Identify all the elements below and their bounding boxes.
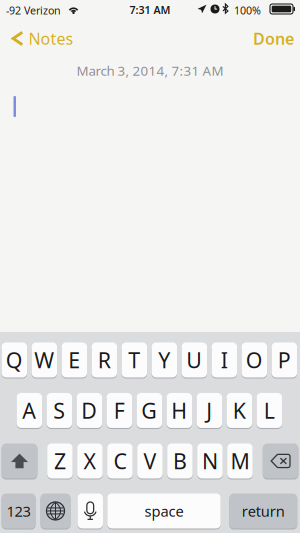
- staticText: P: [278, 346, 291, 374]
- button[interactable]: I: [212, 342, 237, 378]
- button[interactable]: U: [182, 342, 207, 378]
- staticText: X: [83, 447, 96, 475]
- button[interactable]: return: [229, 493, 297, 529]
- button[interactable]: H: [167, 393, 192, 429]
- staticText: H: [171, 396, 187, 425]
- staticText: R: [98, 346, 111, 374]
- staticText: Z: [54, 447, 66, 475]
- staticText: N: [202, 447, 218, 475]
- staticText: S: [53, 396, 65, 425]
- button[interactable]: C: [107, 443, 133, 479]
- button[interactable]: 123: [2, 493, 36, 529]
- button[interactable]: R: [92, 342, 117, 378]
- button[interactable]: M: [227, 443, 253, 479]
- staticText: D: [81, 396, 97, 425]
- staticText: A: [22, 396, 36, 425]
- staticText: J: [206, 396, 212, 425]
- staticText: Notes: [28, 28, 73, 49]
- button[interactable]: Next keyboard: [40, 493, 70, 529]
- staticText: -92 Verizon: [6, 3, 61, 17]
- staticText: G: [141, 396, 157, 425]
- button[interactable]: Delete: [263, 443, 298, 479]
- button[interactable]: Z: [47, 443, 73, 479]
- button[interactable]: L: [257, 393, 282, 429]
- button[interactable]: Y: [152, 342, 177, 378]
- button[interactable]: S: [47, 393, 72, 429]
- staticText: March 3, 2014, 7:31 AM: [76, 62, 223, 79]
- staticText: M: [230, 447, 249, 475]
- button[interactable]: P: [272, 342, 297, 378]
- button[interactable]: O: [242, 342, 267, 378]
- staticText: K: [233, 396, 246, 425]
- staticText: 7:31 AM: [129, 3, 170, 17]
- staticText: L: [264, 396, 275, 425]
- button[interactable]: K: [227, 393, 252, 429]
- staticText: V: [143, 447, 156, 475]
- button[interactable]: E: [62, 342, 87, 378]
- button[interactable]: G: [137, 393, 162, 429]
- staticText: E: [68, 346, 80, 374]
- staticText: 123: [7, 501, 31, 521]
- staticText: Y: [158, 346, 170, 374]
- button[interactable]: space: [107, 493, 221, 529]
- staticText: C: [113, 447, 126, 475]
- staticText: Q: [6, 346, 23, 374]
- button[interactable]: Q: [2, 342, 27, 378]
- staticText: 100%: [234, 3, 261, 17]
- button[interactable]: Notes: [0, 22, 100, 55]
- staticText: T: [128, 346, 140, 374]
- staticText: U: [186, 346, 202, 374]
- button[interactable]: Done: [238, 22, 296, 55]
- staticText: O: [246, 346, 263, 374]
- staticText: Done: [253, 28, 294, 49]
- staticText: W: [34, 346, 54, 374]
- staticText: space: [144, 501, 183, 521]
- button[interactable]: X: [77, 443, 103, 479]
- button[interactable]: T: [122, 342, 147, 378]
- button[interactable]: A: [17, 393, 42, 429]
- button[interactable]: D: [77, 393, 102, 429]
- button[interactable]: N: [197, 443, 223, 479]
- staticText: F: [114, 396, 125, 425]
- staticText: return: [242, 501, 285, 521]
- button[interactable]: V: [137, 443, 163, 479]
- staticText: I: [221, 346, 228, 374]
- button[interactable]: W: [32, 342, 57, 378]
- button[interactable]: B: [167, 443, 193, 479]
- staticText: B: [173, 447, 187, 475]
- button[interactable]: F: [107, 393, 132, 429]
- button[interactable]: J: [197, 393, 222, 429]
- button[interactable]: Dictation: [77, 493, 103, 529]
- button[interactable]: Shift: [2, 443, 37, 479]
